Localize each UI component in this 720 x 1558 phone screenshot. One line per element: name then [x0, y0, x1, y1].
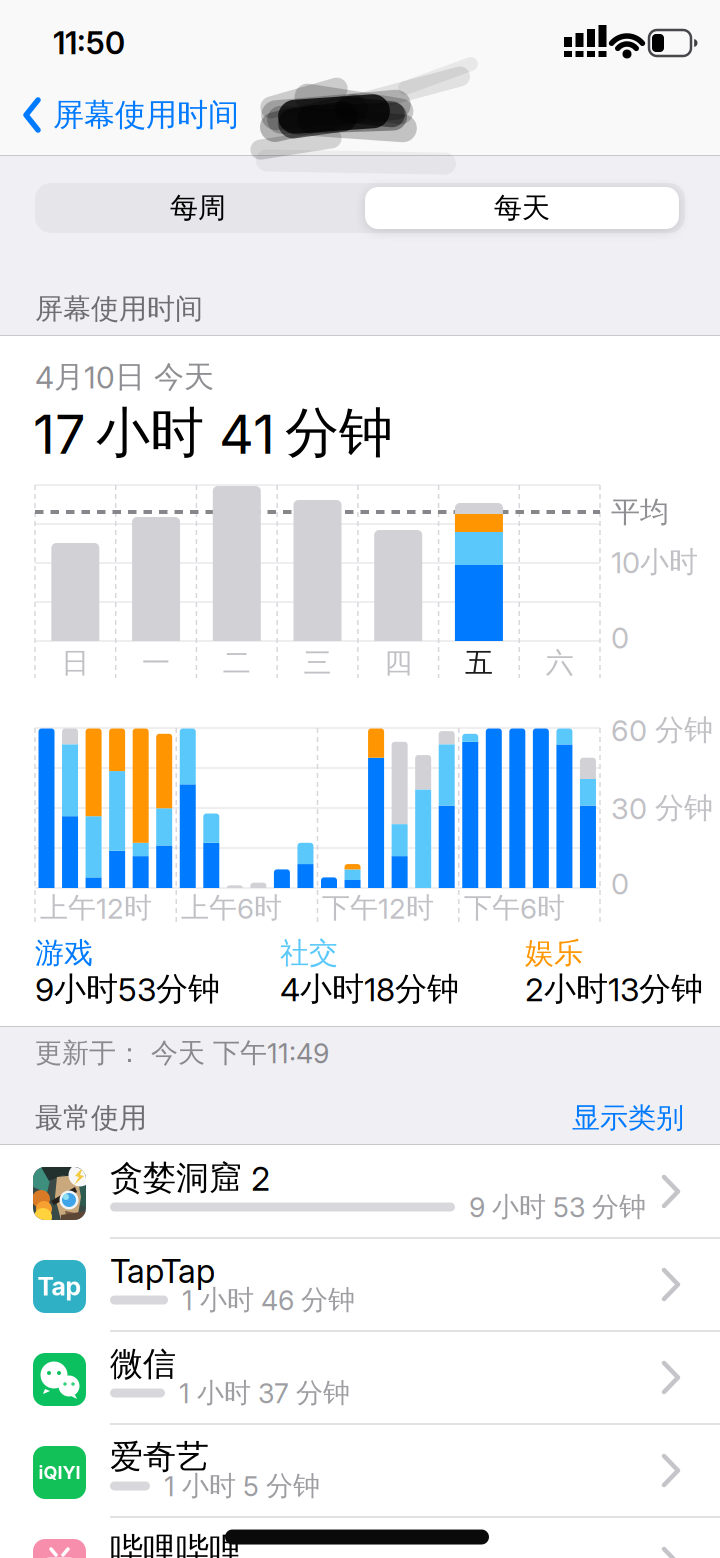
staticText: 下午12时 [322, 890, 434, 926]
staticText: 贪婪洞窟 2 [110, 1157, 270, 1199]
staticText: 下午6时 [464, 890, 565, 926]
staticText: 11:50 [53, 24, 125, 62]
staticText: 上午12时 [40, 890, 152, 926]
button[interactable]: Tap [0, 1238, 720, 1331]
staticText: 屏幕使用时间 [53, 95, 239, 135]
staticText: 每天 [494, 190, 550, 226]
button[interactable]: 微信 [0, 1331, 720, 1424]
staticText: 三 [303, 645, 331, 681]
staticText: 最常使用 [35, 1100, 147, 1136]
staticText: 社交 [280, 935, 338, 971]
staticText: 五 [465, 645, 493, 681]
staticText: 17 小时 41 分钟 [33, 399, 393, 467]
staticText: 9小时53分钟 [35, 969, 220, 1009]
button[interactable]: 哔哩哔哩 [0, 1517, 720, 1558]
staticText: 1 小时 5 分钟 [164, 1469, 320, 1503]
staticText: 爱奇艺 [110, 1436, 209, 1478]
button[interactable]: 贪婪洞窟 2 [0, 1145, 720, 1238]
staticText: 4月10日 今天 [35, 358, 214, 396]
staticText: 60 分钟 [611, 712, 713, 748]
button[interactable]: 每周 [37, 183, 359, 233]
button[interactable]: 显示类别 [572, 1100, 684, 1136]
staticText: 每周 [170, 190, 226, 226]
staticText: 0 [611, 866, 629, 902]
staticText: TapTap [110, 1251, 215, 1291]
staticText: 日 [61, 645, 89, 681]
staticText: 1 小时 37 分钟 [179, 1376, 350, 1410]
staticText: 游戏 [35, 935, 93, 971]
staticText: iQIYI [38, 1462, 80, 1483]
staticText: 娱乐 [525, 935, 583, 971]
staticText: 四 [384, 645, 412, 681]
staticText: 更新于： 今天 下午11:49 [35, 1036, 329, 1070]
staticText: 10小时 [611, 544, 698, 580]
staticText: 0 [611, 620, 629, 656]
staticText: 哔哩哔哩 [110, 1529, 242, 1558]
button[interactable]: 每天 [361, 183, 683, 233]
staticText: 30 分钟 [611, 790, 713, 826]
staticText: 一 [142, 645, 170, 681]
button[interactable]: iQIYI [0, 1424, 720, 1517]
staticText: Tap [37, 1271, 81, 1302]
staticText: 平均 [611, 494, 669, 530]
staticText: 显示类别 [572, 1100, 684, 1136]
staticText: 1 小时 46 分钟 [182, 1283, 355, 1317]
staticText: 六 [546, 645, 574, 681]
staticText: 微信 [110, 1343, 176, 1385]
staticText: 2小时13分钟 [525, 969, 703, 1009]
staticText: 屏幕使用时间 [35, 291, 203, 327]
staticText: 4小时18分钟 [280, 969, 459, 1009]
staticText: 上午6时 [181, 890, 282, 926]
button[interactable]: 返回 屏幕使用时间 [23, 95, 239, 135]
staticText: 9 小时 53 分钟 [469, 1190, 646, 1224]
staticText: 二 [223, 645, 251, 681]
